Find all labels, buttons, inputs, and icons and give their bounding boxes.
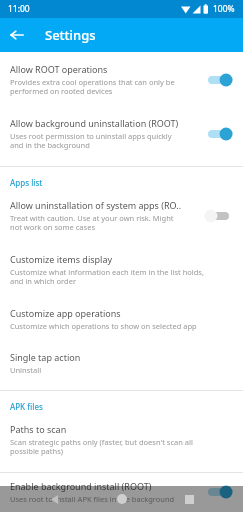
staticText: Customize items display (10, 253, 113, 265)
staticText: Uses root to install APK files in the ba… (10, 494, 175, 504)
button[interactable]: Allow uninstallation of system apps (RO.… (0, 192, 243, 240)
staticText: Uses root permission to uninstall apps q… (10, 131, 172, 151)
staticText: Single tap action (10, 351, 81, 363)
staticText: Settings (45, 26, 96, 44)
staticText: 100% (213, 3, 235, 15)
staticText: Provides extra cool operations that can … (10, 77, 175, 97)
button[interactable]: Customize app operations (0, 300, 243, 338)
staticText: Uninstall (10, 365, 42, 375)
staticText: Apps list (10, 177, 43, 188)
button[interactable]: Back (41, 486, 67, 512)
button[interactable]: Back (0, 18, 34, 52)
button[interactable]: Paths to scan (0, 416, 243, 464)
button[interactable]: Home (109, 486, 135, 512)
staticText: APK files (10, 401, 43, 412)
staticText: Scan strategic paths only (faster, but d… (10, 437, 193, 457)
staticText: Paths to scan (10, 423, 67, 435)
button[interactable]: Customize items display (0, 246, 243, 294)
button[interactable]: Enable background install (ROOT) (0, 473, 243, 511)
staticText: Allow uninstallation of system apps (RO.… (10, 199, 182, 211)
button[interactable]: Recents (176, 486, 202, 512)
staticText: Customize app operations (10, 307, 121, 319)
staticText: Customize which operations to show on se… (10, 321, 197, 331)
staticText: Treat with caution. Use at your own risk… (10, 213, 174, 233)
staticText: Customize what information each item in … (10, 267, 204, 287)
button[interactable]: Single tap action (0, 344, 243, 382)
staticText: Allow ROOT operations (10, 63, 108, 75)
button[interactable]: Allow background uninstallation (ROOT) (0, 110, 243, 158)
button[interactable]: Allow ROOT operations (0, 56, 243, 104)
staticText: Allow background uninstallation (ROOT) (10, 117, 179, 129)
staticText: 11:00 (8, 3, 30, 15)
staticText: Enable background install (ROOT) (10, 480, 152, 492)
